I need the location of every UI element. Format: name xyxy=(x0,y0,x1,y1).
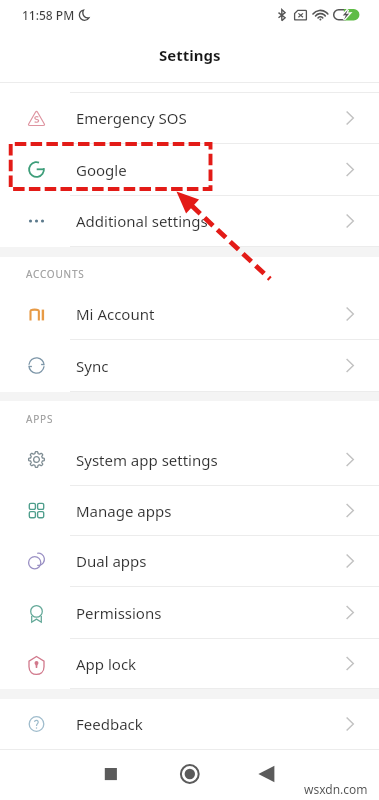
button[interactable]: Emergency SOS xyxy=(0,93,379,144)
staticText: Permissions xyxy=(76,603,162,623)
button[interactable]: App lock xyxy=(0,639,379,689)
staticText: Emergency SOS xyxy=(76,108,187,128)
staticText: Mi Account xyxy=(76,304,155,324)
button[interactable]: System app settings xyxy=(0,434,379,486)
staticText: Settings xyxy=(159,45,221,65)
staticText: ACCOUNTS xyxy=(26,267,85,281)
button[interactable]: Google xyxy=(0,144,379,196)
staticText: Google xyxy=(76,160,127,180)
staticText: Feedback xyxy=(76,714,143,734)
button[interactable]: Additional settings xyxy=(0,196,379,247)
button[interactable]: Dual apps xyxy=(0,536,379,587)
staticText: 11:58 PM xyxy=(22,7,75,23)
staticText: Sync xyxy=(76,356,109,376)
staticText: App lock xyxy=(76,654,137,674)
button[interactable]: Permissions xyxy=(0,587,379,639)
staticText: System app settings xyxy=(76,450,218,470)
staticText: Additional settings xyxy=(76,211,208,231)
staticText: Manage apps xyxy=(76,501,172,521)
staticText: wsxdn.com xyxy=(304,781,368,797)
button[interactable]: Sync xyxy=(0,340,379,392)
staticText: APPS xyxy=(26,412,54,426)
staticText: Dual apps xyxy=(76,551,147,571)
button[interactable]: Mi Account xyxy=(0,289,379,340)
button[interactable]: Feedback xyxy=(0,699,379,749)
button[interactable]: Manage apps xyxy=(0,486,379,536)
